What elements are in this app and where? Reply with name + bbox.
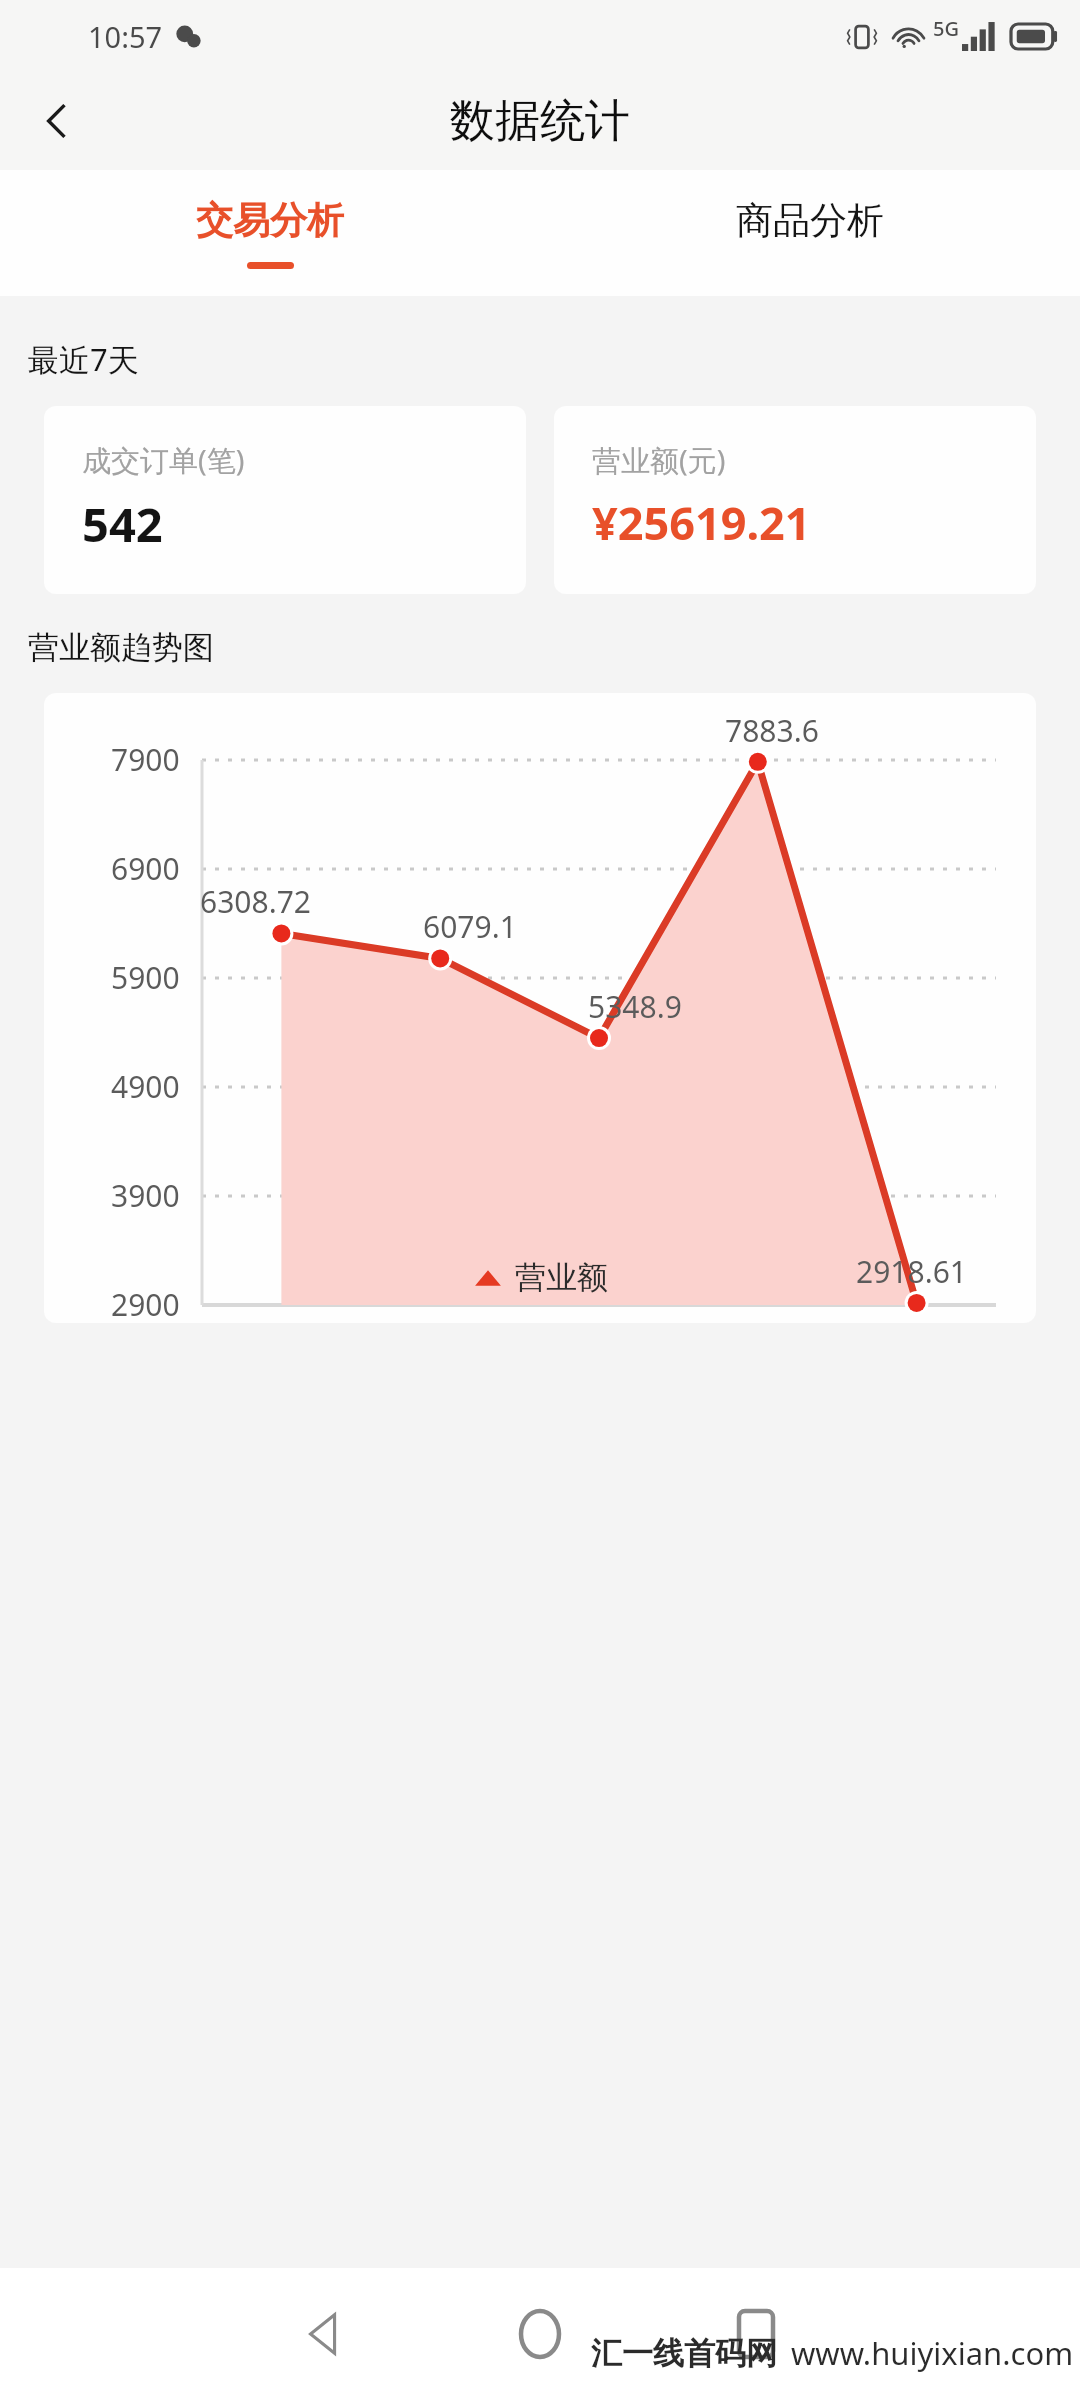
staticText: 营业额(元) <box>592 440 726 480</box>
staticText: 6079.1 <box>423 906 517 947</box>
staticText: 汇一线首码网 <box>591 2334 777 2373</box>
staticText: 7883.6 <box>725 710 819 751</box>
staticText: 5G <box>933 15 959 42</box>
staticText: 数据统计 <box>450 93 630 150</box>
button[interactable]: 7900 <box>44 693 1036 1323</box>
staticText: 4900 <box>111 1066 180 1107</box>
button[interactable]: Recents <box>648 2268 864 2400</box>
staticText: 10:57 <box>88 17 163 56</box>
staticText: 成交订单(笔) <box>82 440 245 480</box>
staticText: 2918.61 <box>856 1251 967 1292</box>
staticText: 交易分析 <box>196 197 344 244</box>
button[interactable]: Home <box>432 2268 648 2400</box>
staticText: 542 <box>82 492 163 556</box>
button[interactable]: 成交订单(笔) <box>44 406 526 594</box>
staticText: 营业额趋势图 <box>28 628 214 667</box>
staticText: 2900 <box>111 1284 180 1323</box>
staticText: 商品分析 <box>736 197 884 244</box>
button[interactable]: 商品分析 <box>540 170 1080 296</box>
button[interactable]: 营业额(元) <box>554 406 1036 594</box>
staticText: 营业额 <box>515 1258 608 1297</box>
staticText: 5348.9 <box>588 986 682 1027</box>
staticText: 6308.72 <box>200 881 311 922</box>
button[interactable]: 交易分析 <box>0 170 540 296</box>
staticText: 最近7天 <box>28 338 139 380</box>
staticText: 5900 <box>111 957 180 998</box>
staticText: ¥25619.21 <box>592 492 811 553</box>
staticText: 3900 <box>111 1175 180 1216</box>
staticText: 7900 <box>111 739 180 780</box>
staticText: 6900 <box>111 848 180 889</box>
staticText: www.huiyixian.com <box>791 2332 1074 2374</box>
button[interactable]: Back <box>216 2268 432 2400</box>
button[interactable]: Back <box>16 79 100 163</box>
